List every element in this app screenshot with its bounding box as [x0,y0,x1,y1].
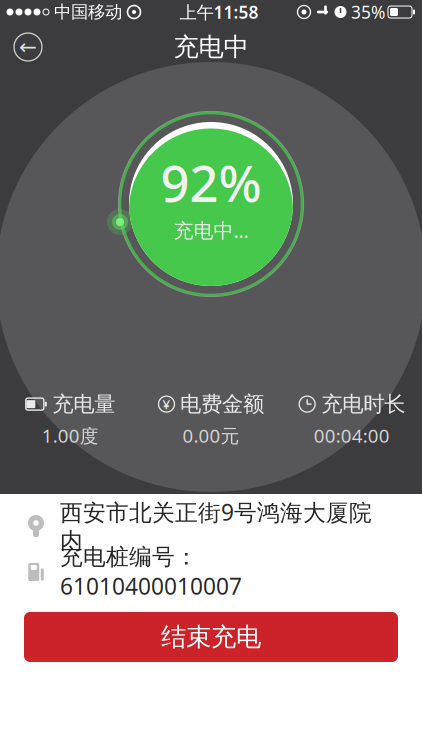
staticText: 充电量 [52,391,115,417]
staticText: 充电中... [173,217,248,243]
staticText: ← [19,35,37,59]
staticText: 92% [160,149,261,216]
staticText: 1.00度 [42,423,99,448]
staticText: 充电桩编号：61010400010007 [60,543,242,601]
staticText: 结束充电 [161,621,261,652]
button[interactable]: 结束充电 [24,612,398,662]
button[interactable]: 返回 [4,24,52,70]
staticText: 充电中 [173,31,248,62]
staticText: 充电时长 [321,391,405,417]
staticText: 电费金额 [180,391,264,417]
staticText: 0.00元 [182,423,239,448]
staticText: ¥ [162,395,170,413]
staticText: 西安市北关正街9号鸿海大厦院内 [60,497,372,555]
staticText: 35% [351,0,385,23]
staticText: 上午11:58 [179,0,258,23]
staticText: 中国移动 [54,1,122,23]
staticText: 00:04:00 [314,423,390,448]
